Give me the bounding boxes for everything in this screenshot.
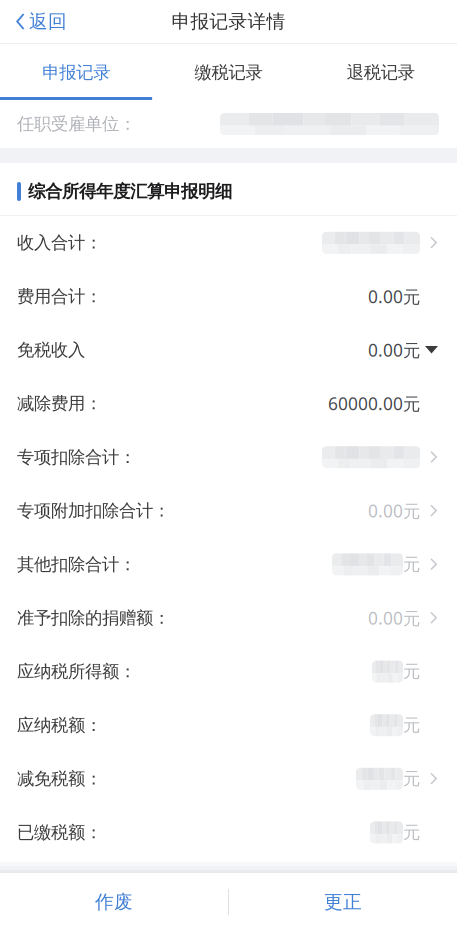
- staticText: 费用合计：: [17, 286, 102, 307]
- staticText: 应纳税额：: [17, 715, 102, 736]
- staticText: 综合所得年度汇算申报明细: [28, 181, 232, 202]
- button[interactable]: 应纳税所得额：: [0, 645, 457, 698]
- staticText: 0.00元: [368, 606, 420, 629]
- button[interactable]: 准予扣除的捐赠额：: [0, 591, 457, 645]
- staticText: 作废: [95, 890, 133, 913]
- staticText: 申报记录详情: [171, 10, 285, 33]
- staticText: 返回: [29, 10, 67, 33]
- staticText: 0.00元: [368, 338, 420, 361]
- button[interactable]: 返回: [0, 0, 79, 43]
- button[interactable]: 专项附加扣除合计：: [0, 484, 457, 538]
- button[interactable]: 已缴税额：: [0, 806, 457, 859]
- staticText: 元: [403, 554, 420, 575]
- button[interactable]: 减除费用：: [0, 377, 457, 430]
- staticText: 准予扣除的捐赠额：: [17, 607, 170, 629]
- staticText: 60000.00元: [328, 392, 420, 415]
- staticText: 已缴税额：: [17, 822, 102, 843]
- staticText: 元: [403, 822, 420, 843]
- staticText: 减免税额：: [17, 768, 102, 789]
- staticText: 缴税记录: [194, 62, 262, 83]
- staticText: 收入合计：: [17, 232, 102, 253]
- button[interactable]: 费用合计：: [0, 270, 457, 323]
- staticText: 减除费用：: [17, 393, 102, 414]
- button[interactable]: 免税收入: [0, 323, 457, 377]
- staticText: 申报记录: [42, 62, 110, 83]
- button[interactable]: 申报记录: [0, 48, 152, 100]
- button[interactable]: 应纳税额：: [0, 698, 457, 752]
- staticText: 专项扣除合计：: [17, 447, 136, 468]
- staticText: 元: [403, 768, 420, 789]
- button[interactable]: 收入合计：: [0, 216, 457, 270]
- staticText: 任职受雇单位：: [17, 113, 136, 135]
- staticText: 退税记录: [347, 62, 415, 83]
- staticText: 元: [403, 661, 420, 682]
- button[interactable]: 其他扣除合计：: [0, 538, 457, 591]
- staticText: 专项附加扣除合计：: [17, 500, 170, 521]
- staticText: 免税收入: [17, 339, 85, 361]
- staticText: 0.00元: [368, 285, 420, 308]
- staticText: 应纳税所得额：: [17, 661, 136, 682]
- staticText: 0.00元: [368, 499, 420, 522]
- button[interactable]: 作废: [0, 873, 228, 931]
- staticText: 元: [403, 715, 420, 736]
- button[interactable]: 退税记录: [305, 48, 457, 100]
- staticText: 其他扣除合计：: [17, 554, 136, 575]
- button[interactable]: 更正: [229, 873, 457, 931]
- staticText: 更正: [324, 890, 362, 913]
- button[interactable]: 专项扣除合计：: [0, 430, 457, 484]
- button[interactable]: 缴税记录: [152, 48, 305, 100]
- button[interactable]: 减免税额：: [0, 752, 457, 806]
